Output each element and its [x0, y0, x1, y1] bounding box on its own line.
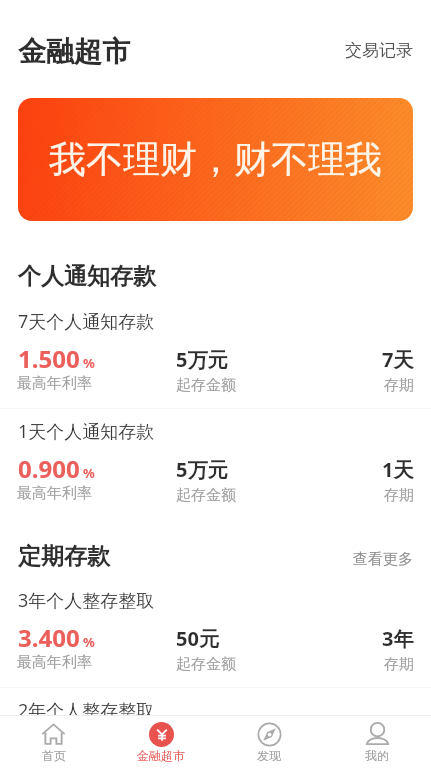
staticText: 1天 [382, 456, 414, 483]
other: 我的 [365, 722, 390, 747]
button[interactable]: 7天个人通知存款 [0, 309, 431, 419]
button[interactable]: 个人通知存款 [0, 262, 156, 291]
staticText: 3年个人整存整取 [18, 588, 155, 613]
button[interactable]: 我的 [323, 716, 431, 768]
staticText: 1.500 [18, 342, 80, 375]
staticText: 5万元 [176, 456, 228, 483]
button[interactable]: 我不理财，财不理我 [18, 98, 413, 221]
staticText: 3.400 [18, 621, 80, 654]
staticText: 交易记录 [345, 40, 413, 61]
staticText: % [83, 464, 95, 482]
staticText: 个人通知存款 [18, 262, 156, 291]
staticText: 查看更多 [353, 550, 413, 569]
staticText: 最高年利率 [17, 484, 92, 503]
staticText: % [83, 633, 95, 651]
button[interactable]: 2年个人整存整取 [0, 698, 431, 723]
staticText: 7天个人通知存款 [18, 309, 155, 334]
staticText: 起存金额 [176, 486, 236, 505]
button[interactable]: 金融超市 [107, 716, 215, 768]
staticText: 50元 [176, 625, 219, 652]
staticText: 7天 [382, 346, 414, 373]
button[interactable]: 查看更多 [353, 550, 431, 569]
staticText: 存期 [384, 376, 414, 395]
button[interactable]: 金融超市 [18, 34, 130, 69]
staticText: 金融超市 [18, 34, 130, 69]
staticText: 我不理财，财不理我 [49, 136, 382, 183]
staticText: 我的 [365, 748, 389, 763]
button[interactable]: 发现 [215, 716, 323, 768]
other: 金融超市 [149, 722, 174, 747]
button[interactable]: 交易记录 [345, 40, 431, 61]
staticText: 存期 [384, 655, 414, 674]
staticText: 1天个人通知存款 [18, 419, 155, 444]
staticText: 0.900 [18, 452, 80, 485]
staticText: 5万元 [176, 346, 228, 373]
other: 首页 [41, 722, 66, 747]
staticText: 起存金额 [176, 655, 236, 674]
staticText: 定期存款 [18, 542, 110, 571]
button[interactable]: 首页 [0, 716, 107, 768]
staticText: 最高年利率 [17, 374, 92, 393]
staticText: 金融超市 [137, 748, 185, 763]
staticText: 3年 [382, 625, 414, 652]
button[interactable]: 3年个人整存整取 [0, 588, 431, 698]
staticText: 首页 [42, 748, 66, 763]
staticText: 发现 [257, 748, 281, 763]
button[interactable]: 定期存款 [0, 542, 110, 571]
staticText: 2年个人整存整取 [18, 698, 155, 723]
staticText: % [83, 354, 95, 372]
button[interactable]: 1天个人通知存款 [0, 419, 431, 529]
staticText: 起存金额 [176, 376, 236, 395]
staticText: 存期 [384, 486, 414, 505]
other: 发现 [257, 722, 282, 747]
staticText: 最高年利率 [17, 653, 92, 672]
